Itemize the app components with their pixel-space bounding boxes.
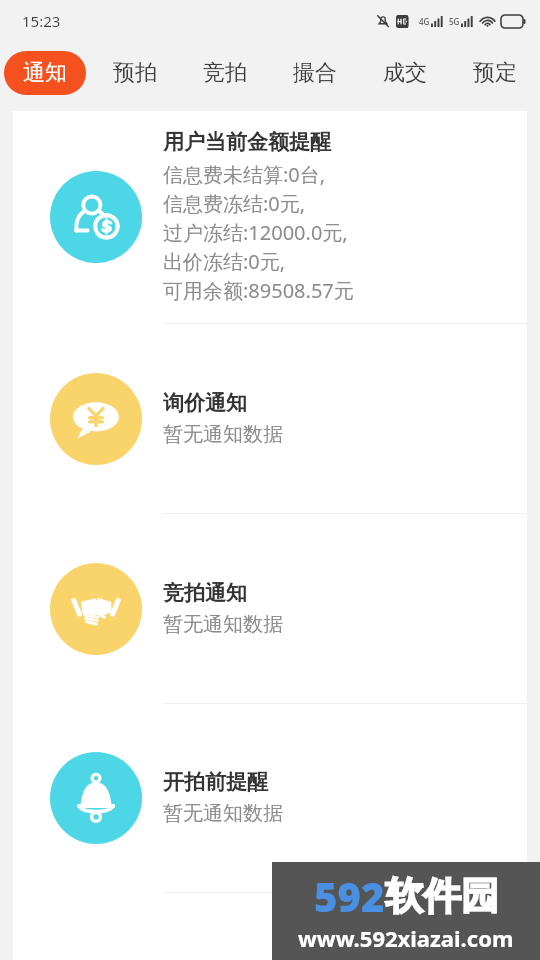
staticText: 撮合 <box>293 59 337 87</box>
button[interactable]: 竞拍通知 <box>13 514 527 703</box>
button[interactable]: 开拍前提醒 <box>13 704 527 892</box>
staticText: 预定 <box>473 59 517 87</box>
staticText: 软件园 <box>385 872 499 920</box>
other: 询价通知 <box>50 373 142 465</box>
button[interactable]: 询价通知 <box>13 324 527 513</box>
staticText: 预拍 <box>113 59 157 87</box>
other: 用户当前金额提醒 <box>50 171 142 263</box>
button[interactable]: 用户当前金额提醒 <box>13 111 527 323</box>
button[interactable]: 通知 <box>4 51 86 95</box>
button[interactable]: 撮合 <box>274 51 356 95</box>
staticText: 竞拍 <box>203 59 247 87</box>
staticText: 用户当前金额提醒 <box>163 129 331 155</box>
staticText: 信息费冻结:0元, <box>163 190 306 217</box>
button[interactable]: 竞拍 <box>184 51 266 95</box>
other: 竞拍通知 <box>50 563 142 655</box>
staticText: 过户冻结:12000.0元, <box>163 219 348 246</box>
staticText: 开拍前提醒 <box>163 769 268 795</box>
staticText: 4G <box>419 16 430 27</box>
staticText: 5G <box>449 16 460 27</box>
button[interactable]: 预定 <box>454 51 536 95</box>
staticText: 出价冻结:0元, <box>163 248 286 275</box>
staticText: 592 <box>314 869 385 923</box>
staticText: 询价通知 <box>163 390 247 416</box>
staticText: 竞拍通知 <box>163 580 247 606</box>
staticText: 暂无通知数据 <box>163 801 283 826</box>
staticText: 通知 <box>23 59 67 87</box>
other: 开拍前提醒 <box>50 752 142 844</box>
button[interactable]: 成交 <box>364 51 446 95</box>
staticText: 15:23 <box>22 11 61 31</box>
staticText: 暂无通知数据 <box>163 612 283 637</box>
staticText: 暂无通知数据 <box>163 422 283 447</box>
staticText: 成交 <box>383 59 427 87</box>
staticText: 信息费未结算:0台, <box>163 161 326 188</box>
staticText: 可用余额:89508.57元 <box>163 277 354 304</box>
button[interactable]: 预拍 <box>94 51 176 95</box>
staticText: www.592xiazai.com <box>298 923 514 953</box>
